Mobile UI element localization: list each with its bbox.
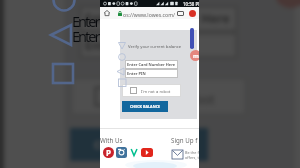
button[interactable]: Enter Card Number Here (79, 5, 238, 32)
staticText: CHECK BALANCE (130, 104, 161, 109)
staticText: 10:58 PM (183, 1, 199, 7)
staticText: With Us (100, 136, 123, 144)
button[interactable]: I'm not a robot (122, 84, 181, 97)
button[interactable]: Instagram (116, 147, 127, 158)
button[interactable]: Enter PIN (125, 69, 178, 78)
staticText: P (106, 147, 111, 158)
staticText: Verify your current balance (128, 44, 182, 50)
staticText: Sign Up f (171, 136, 198, 144)
staticText: CHECK BALANCE (94, 137, 187, 152)
button[interactable]: Enter PIN (79, 32, 238, 59)
staticText: Enter PIN (85, 38, 142, 53)
staticText: m (193, 52, 199, 60)
button[interactable]: CHECK BALANCE (70, 128, 208, 161)
button[interactable]: Pinterest (103, 147, 114, 158)
button[interactable]: YouTube (141, 148, 153, 157)
staticText: Enter Card Number Here (72, 11, 198, 31)
staticText: Enter Card Number Here (127, 62, 176, 67)
staticText: I'm not a robot (127, 92, 217, 110)
staticText: offers, ti (185, 155, 199, 160)
staticText: os://www.lowes.com/ (123, 11, 175, 18)
staticText: Be the fi (185, 150, 199, 155)
staticText: Enter PIN (72, 26, 119, 46)
button[interactable]: CHECK BALANCE (122, 101, 168, 112)
button[interactable]: I'm not a robot (70, 77, 247, 116)
staticText: Enter PIN (127, 71, 146, 76)
staticText: I'm not a robot (141, 89, 171, 95)
staticText: Enter Card Number Here (85, 11, 232, 26)
button[interactable]: Chat (190, 50, 199, 61)
button[interactable]: Chat (274, 0, 300, 8)
button[interactable]: Vine (129, 147, 139, 158)
button[interactable]: Enter Card Number Here (125, 60, 178, 69)
